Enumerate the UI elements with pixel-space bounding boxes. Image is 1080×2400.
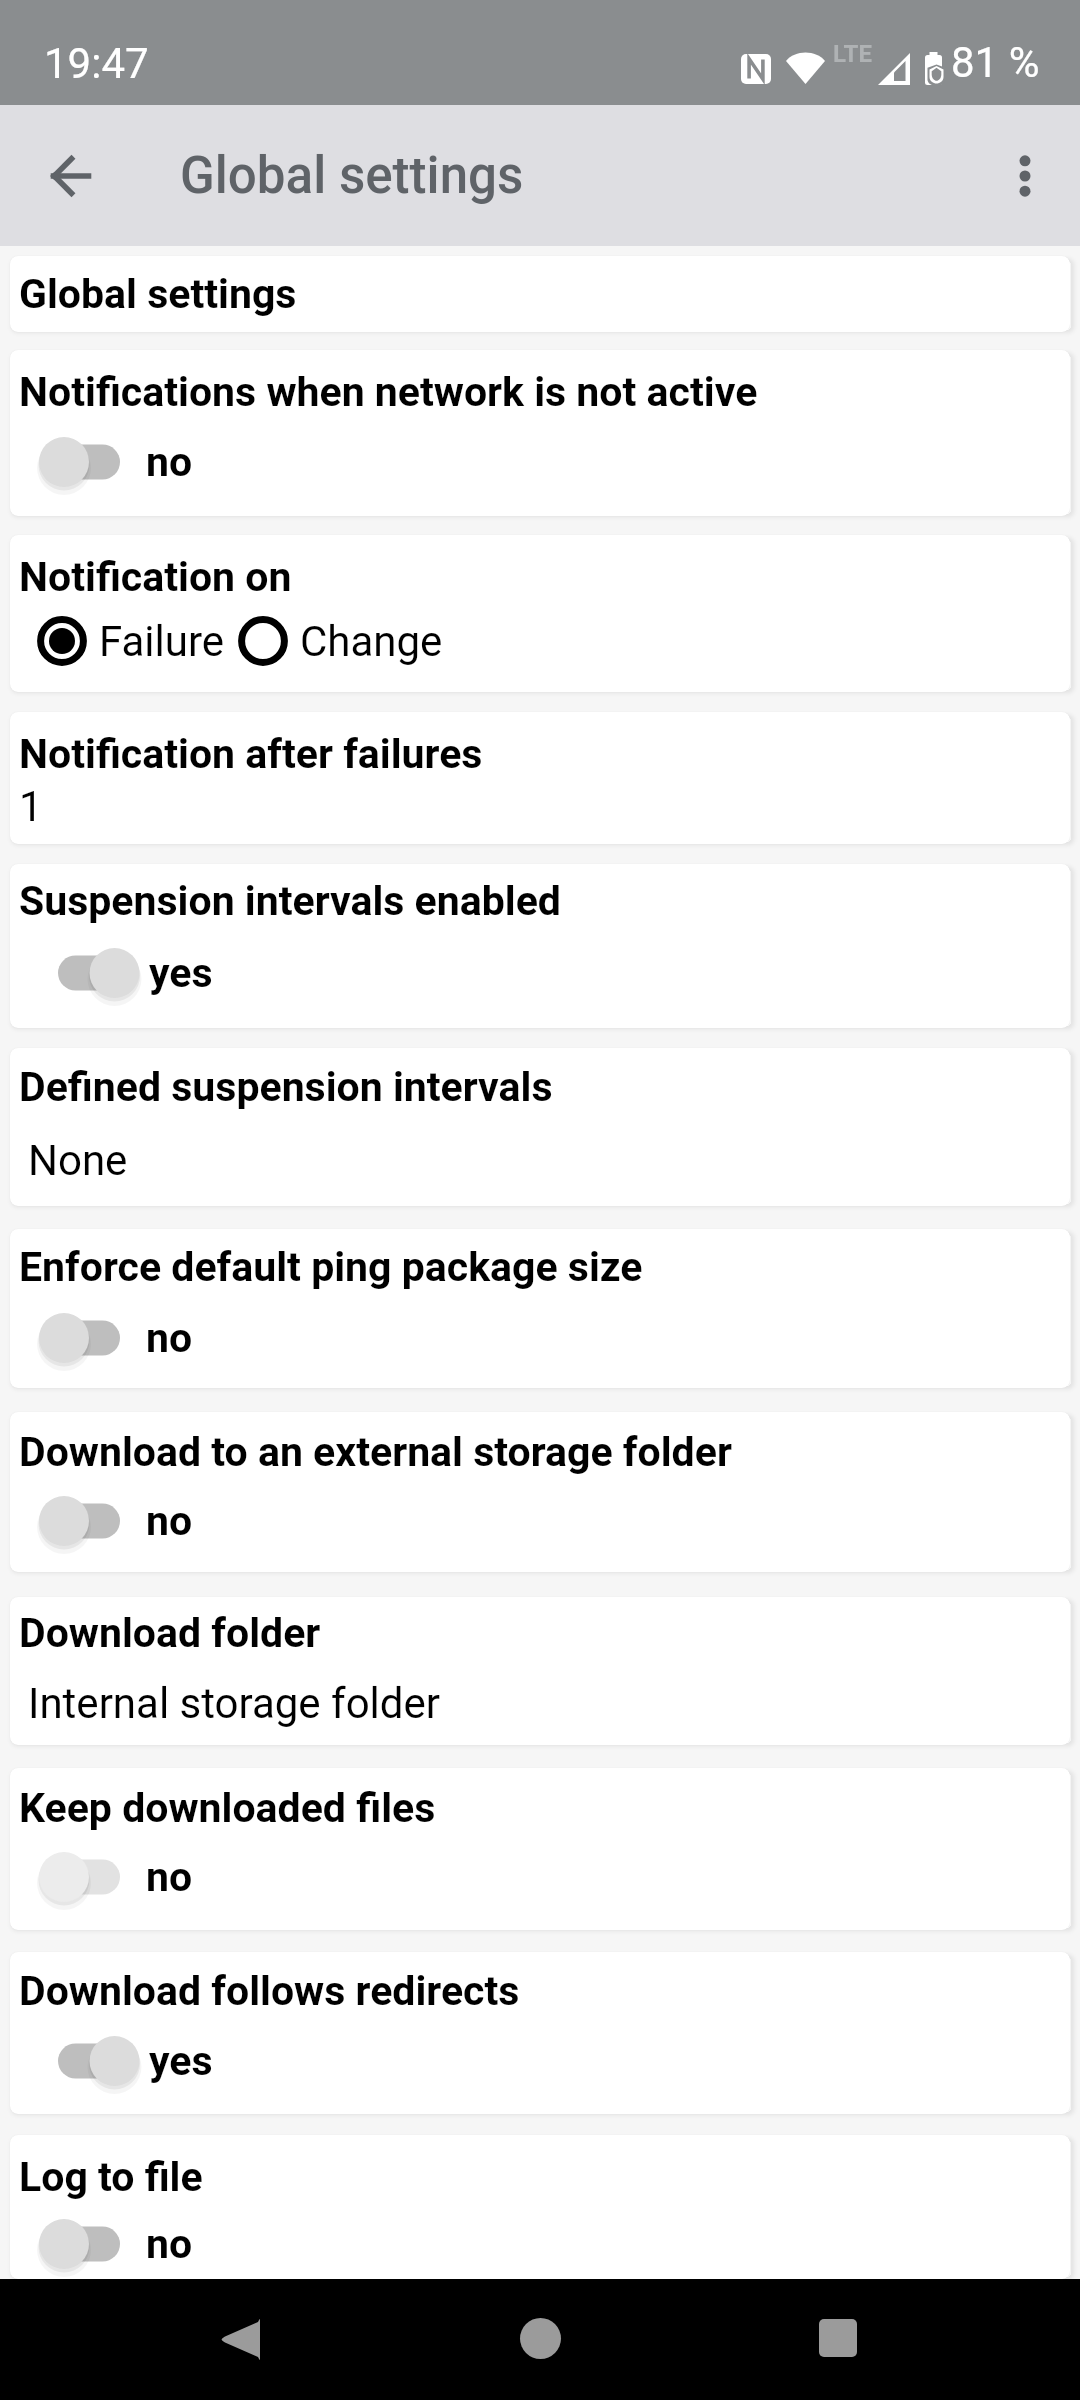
staticText: Notifications when network is not active bbox=[19, 368, 758, 416]
button[interactable]: Suspension intervals enabled bbox=[10, 864, 1070, 1028]
staticText: Download follows redirects bbox=[19, 1967, 520, 2015]
staticText: 19:47 bbox=[44, 39, 149, 88]
staticText: Keep downloaded files bbox=[19, 1784, 436, 1832]
button[interactable]: Toggle bbox=[51, 2036, 133, 2086]
staticText: 1 bbox=[19, 782, 43, 831]
button[interactable]: Download folder bbox=[10, 1597, 1070, 1745]
staticText: Download to an external storage folder bbox=[19, 1428, 732, 1476]
button[interactable]: Notification on bbox=[10, 535, 1070, 692]
button[interactable]: Toggle bbox=[39, 2219, 121, 2269]
staticText: Enforce default ping package size bbox=[19, 1243, 643, 1291]
staticText: no bbox=[146, 1497, 193, 1545]
button[interactable]: Toggle bbox=[51, 948, 133, 998]
button[interactable]: Download to an external storage folder bbox=[10, 1412, 1070, 1572]
staticText: no bbox=[146, 1314, 193, 1362]
button[interactable]: Failure bbox=[37, 616, 225, 666]
staticText: Log to file bbox=[19, 2153, 203, 2201]
button[interactable]: Notification after failures bbox=[10, 712, 1070, 844]
button[interactable]: Keep downloaded files bbox=[10, 1768, 1070, 1930]
button[interactable]: Back bbox=[0, 2279, 360, 2400]
staticText: None bbox=[28, 1136, 128, 1185]
button[interactable]: Home bbox=[360, 2279, 720, 2400]
staticText: Internal storage folder bbox=[28, 1679, 440, 1728]
button[interactable]: Toggle bbox=[39, 1496, 121, 1546]
staticText: Global settings bbox=[19, 270, 297, 318]
staticText: Notification after failures bbox=[19, 730, 483, 778]
staticText: Suspension intervals enabled bbox=[19, 877, 561, 925]
staticText: no bbox=[146, 438, 193, 486]
button[interactable]: Log to file bbox=[10, 2135, 1070, 2279]
staticText: Notification on bbox=[19, 553, 292, 601]
staticText: yes bbox=[149, 949, 213, 997]
staticText: LTE bbox=[833, 40, 872, 68]
staticText: yes bbox=[149, 2037, 213, 2085]
staticText: Download folder bbox=[19, 1609, 321, 1657]
staticText: Global settings bbox=[180, 146, 524, 206]
button[interactable]: Download follows redirects bbox=[10, 1952, 1070, 2114]
button[interactable]: Toggle bbox=[39, 1852, 121, 1902]
button[interactable]: Recent apps bbox=[720, 2279, 1080, 2400]
staticText: Defined suspension intervals bbox=[19, 1063, 553, 1111]
staticText: no bbox=[146, 2220, 193, 2268]
button[interactable]: Toggle bbox=[39, 1313, 121, 1363]
button[interactable]: More options bbox=[970, 105, 1080, 246]
staticText: no bbox=[146, 1853, 193, 1901]
button[interactable]: Toggle bbox=[39, 437, 121, 487]
button[interactable]: Defined suspension intervals bbox=[10, 1048, 1070, 1206]
button[interactable]: Back bbox=[0, 105, 141, 246]
button[interactable]: Global settings bbox=[10, 256, 1070, 332]
button[interactable]: Notifications when network is not active bbox=[10, 350, 1070, 516]
button[interactable]: Change bbox=[238, 616, 443, 666]
staticText: Change bbox=[300, 617, 443, 666]
staticText: Failure bbox=[99, 617, 225, 666]
staticText: 81 % bbox=[951, 38, 1040, 87]
button[interactable]: Enforce default ping package size bbox=[10, 1229, 1070, 1388]
